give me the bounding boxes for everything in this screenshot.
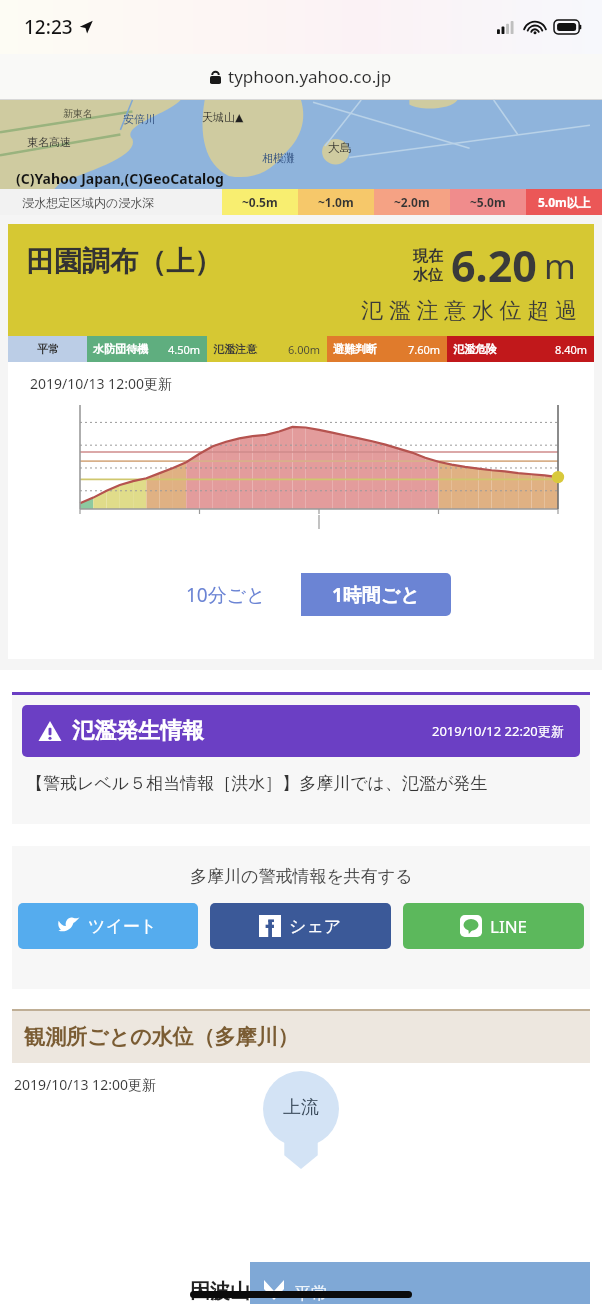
staticText: ~5.0m <box>470 194 506 210</box>
staticText: 2019/10/13 12:00更新 <box>14 1075 156 1094</box>
button[interactable]: 氾濫発生情報 <box>22 705 580 757</box>
staticText: 平常 <box>294 1283 328 1304</box>
button[interactable]: typhoon.yahoo.co.jp <box>0 54 602 99</box>
button[interactable]: ツイート <box>18 903 198 949</box>
staticText: 10分ごと <box>186 582 266 608</box>
staticText: 6.20 <box>451 236 537 295</box>
staticText: 7.60m <box>408 342 441 357</box>
staticText: 5.0m以上 <box>538 194 591 210</box>
staticText: 相模灘 <box>262 151 295 165</box>
staticText: ~2.0m <box>394 194 430 210</box>
staticText: 水位 <box>413 266 443 285</box>
staticText: 平常 <box>37 342 59 356</box>
staticText: 安倍川 <box>123 112 156 126</box>
staticText: 観測所ごとの水位（多摩川） <box>24 1024 299 1050</box>
staticText: 氾 濫 注 意 水 位 超 過 <box>361 294 578 324</box>
staticText: 12:23 <box>24 14 73 40</box>
button[interactable]: 1時間ごと <box>301 573 451 616</box>
staticText: typhoon.yahoo.co.jp <box>228 65 392 88</box>
staticText: 天城山▲ <box>202 110 244 124</box>
button[interactable]: シェア <box>210 903 391 949</box>
staticText: 2019/10/13 12:00更新 <box>30 374 172 393</box>
staticText: 田園調布（上） <box>26 244 222 279</box>
staticText: シェア <box>289 916 342 937</box>
staticText: 8.40m <box>555 342 588 357</box>
staticText: ~0.5m <box>242 194 278 210</box>
staticText: 避難判断 <box>333 342 377 356</box>
staticText: LINE <box>490 915 528 938</box>
staticText: 1時間ごと <box>332 582 420 608</box>
staticText: 氾濫危険 <box>453 342 497 356</box>
button[interactable]: 10分ごと <box>151 573 301 616</box>
staticText: 因波山 <box>190 1279 250 1304</box>
staticText: 水防団待機 <box>93 342 148 356</box>
staticText: 6.00m <box>288 342 321 357</box>
staticText: 【警戒レベル５相当情報［洪水］】多摩川では、氾濫が発生 <box>26 773 488 794</box>
staticText: 氾濫注意 <box>213 342 257 356</box>
staticText: 多摩川の警戒情報を共有する <box>190 866 413 887</box>
staticText: 浸水想定区域内の浸水深 <box>22 195 155 210</box>
staticText: 新東名 <box>63 107 93 120</box>
staticText: 大島 <box>328 140 352 155</box>
staticText: ~1.0m <box>318 194 354 210</box>
staticText: 東名高速 <box>27 135 71 149</box>
staticText: 現在 <box>413 247 443 266</box>
staticText: (C)Yahoo Japan,(C)GeoCatalog <box>16 169 224 188</box>
staticText: 2019/10/12 22:20更新 <box>432 722 564 740</box>
staticText: 上流 <box>283 1096 319 1119</box>
staticText: ツイート <box>88 916 158 937</box>
staticText: 4.50m <box>168 342 201 357</box>
button[interactable]: LINE <box>403 903 584 949</box>
staticText: m <box>544 243 576 289</box>
staticText: 氾濫発生情報 <box>72 717 204 745</box>
button[interactable]: 平常 <box>250 1262 590 1304</box>
